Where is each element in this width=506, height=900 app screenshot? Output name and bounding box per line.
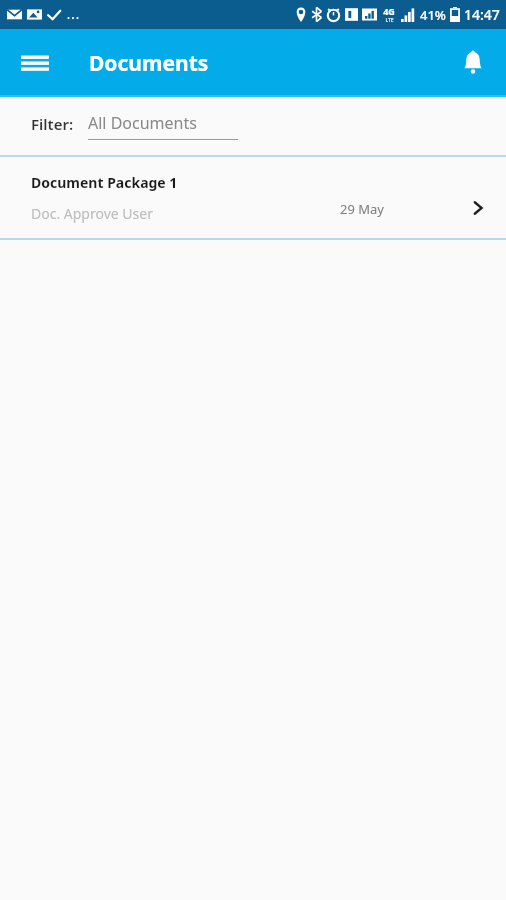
staticText: 14:47 xyxy=(464,5,500,24)
staticText: LTE xyxy=(385,17,394,24)
staticText: Filter: xyxy=(31,114,74,134)
staticText: Document Package 1 xyxy=(31,173,178,192)
staticText: 41% xyxy=(420,6,446,24)
button[interactable]: Open document package xyxy=(460,190,496,226)
button[interactable]: Document Package 1 xyxy=(0,157,506,238)
staticText: Documents xyxy=(89,49,209,78)
staticText: Doc. Approve User xyxy=(31,204,153,223)
staticText: 4G xyxy=(383,5,395,17)
button[interactable]: Open navigation menu xyxy=(18,46,52,80)
button[interactable]: Notifications xyxy=(454,44,492,82)
staticText: All Documents xyxy=(88,112,197,134)
button[interactable]: All Documents xyxy=(88,112,238,140)
staticText: 29 May xyxy=(340,200,384,218)
